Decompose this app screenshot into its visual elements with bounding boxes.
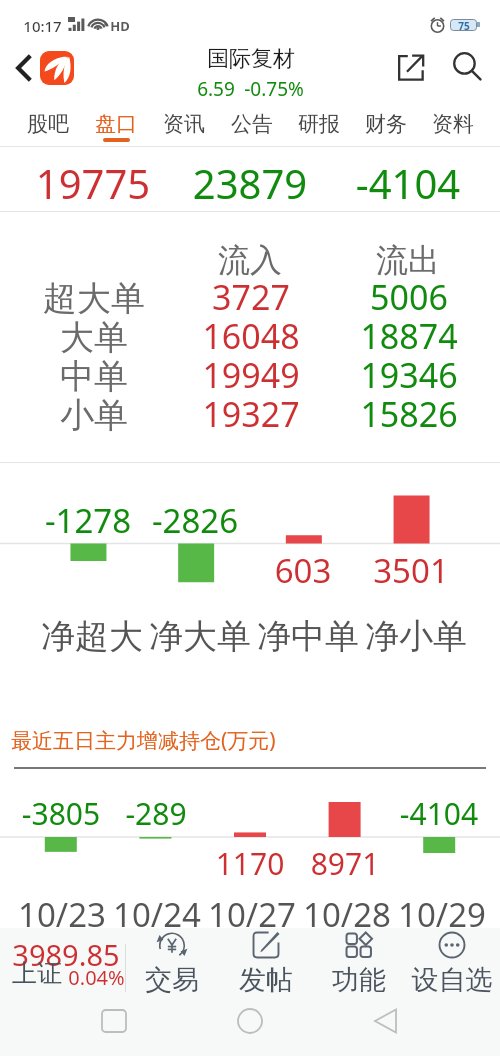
button[interactable]: 盘口 — [82, 98, 150, 146]
staticText: 19949 — [151, 352, 351, 396]
staticText: 19775 — [0, 156, 193, 200]
staticText: 大单 — [0, 316, 194, 359]
staticText: HD — [110, 17, 130, 35]
staticText: -4104 — [308, 156, 500, 200]
staticText: 公告 — [231, 111, 273, 137]
staticText: 603 — [203, 548, 403, 592]
staticText: 超大单 — [0, 277, 194, 320]
button[interactable]: App home — [40, 51, 74, 85]
staticText: 23879 — [150, 156, 350, 200]
staticText: 10/28 — [247, 892, 447, 936]
staticText: 6.59 — [197, 76, 235, 102]
staticText: 10/27 — [152, 892, 352, 936]
button[interactable]: Functions — [312, 928, 406, 1008]
staticText: 3989.85 — [12, 935, 120, 974]
staticText: 3501 — [311, 548, 500, 592]
staticText: 净小单 — [316, 615, 500, 658]
staticText: 中单 — [0, 355, 194, 398]
staticText: -0.75% — [244, 76, 304, 102]
staticText: 10/23 — [0, 892, 162, 936]
staticText: 财务 — [365, 111, 407, 137]
button[interactable]: Search — [446, 45, 488, 87]
staticText: 股吧 — [27, 111, 69, 137]
button[interactable]: 研报 — [285, 98, 352, 146]
button[interactable]: 3989.85 — [0, 928, 125, 1008]
button[interactable]: Watchlist — [405, 928, 499, 1008]
staticText: 净超大 — [0, 615, 192, 658]
button[interactable]: Trade — [125, 928, 219, 1008]
staticText: 盘口 — [95, 111, 137, 137]
staticText: 75 — [458, 19, 470, 31]
staticText: 8971 — [245, 843, 445, 884]
staticText: -3805 — [0, 793, 161, 834]
staticText: 净大单 — [100, 615, 300, 658]
staticText: 16048 — [151, 313, 351, 357]
staticText: 10/24 — [57, 892, 257, 936]
staticText: 资料 — [432, 111, 474, 137]
staticText: -2826 — [95, 498, 295, 542]
staticText: 1170 — [150, 843, 350, 884]
staticText: 功能 — [312, 963, 406, 997]
staticText: 19346 — [309, 352, 500, 396]
staticText: 3727 — [151, 274, 351, 318]
staticText: -1278 — [0, 498, 188, 542]
staticText: 19327 — [151, 391, 351, 435]
staticText: 研报 — [298, 111, 340, 137]
button[interactable]: 资料 — [419, 98, 486, 146]
staticText: 10:17 — [23, 16, 62, 36]
staticText: 发帖 — [219, 963, 313, 997]
button[interactable]: Post — [219, 928, 313, 1008]
staticText: -4104 — [339, 793, 500, 834]
staticText: 最近五日主力增减持仓(万元) — [11, 726, 276, 755]
staticText: 净中单 — [208, 615, 408, 658]
button[interactable]: 资讯 — [150, 98, 218, 146]
staticText: 国际复材 — [207, 45, 295, 73]
staticText: 流入 — [150, 240, 350, 280]
staticText: 10/29 — [342, 892, 500, 936]
staticText: 上证 — [12, 958, 62, 989]
staticText: 交易 — [125, 963, 219, 997]
staticText: 小单 — [0, 394, 194, 437]
staticText: 设自选 — [405, 963, 499, 997]
button[interactable]: 财务 — [352, 98, 419, 146]
staticText: -289 — [56, 793, 256, 834]
staticText: 18874 — [309, 313, 500, 357]
button[interactable]: Share — [389, 46, 431, 88]
button[interactable]: 公告 — [218, 98, 285, 146]
staticText: 流出 — [308, 240, 500, 280]
button[interactable]: Back — [5, 49, 43, 87]
staticText: 5006 — [309, 274, 500, 318]
staticText: 15826 — [309, 391, 500, 435]
staticText: 资讯 — [163, 111, 205, 137]
staticText: 0.04% — [68, 964, 125, 991]
button[interactable]: 股吧 — [14, 98, 82, 146]
